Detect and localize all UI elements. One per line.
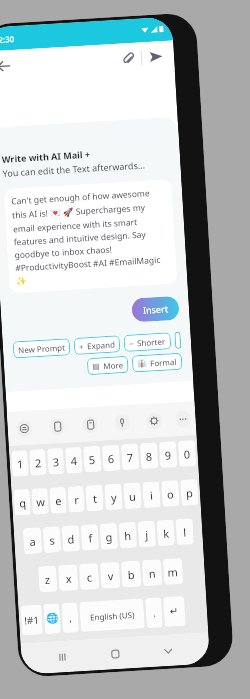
button[interactable]: Back (0, 54, 15, 77)
staticText: u (129, 489, 136, 504)
staticText: . (152, 606, 156, 620)
button[interactable]: s (43, 526, 61, 553)
button[interactable]: x (58, 564, 78, 591)
button[interactable]: w (31, 488, 49, 515)
button[interactable]: Attach file (117, 48, 139, 69)
staticText: Formal (150, 356, 177, 368)
button[interactable]: + (73, 335, 120, 355)
button[interactable]: 4 (65, 447, 82, 474)
button[interactable]: u (123, 482, 142, 509)
button[interactable]: 9 (159, 441, 177, 468)
staticText: 4 (70, 453, 78, 468)
staticText: Can't get enough of how awesome this AI … (11, 186, 170, 286)
staticText: k (163, 526, 170, 541)
staticText: 7 (126, 450, 134, 465)
button[interactable]: l (175, 518, 194, 545)
button[interactable]: 7 (121, 443, 139, 470)
button[interactable]: More (168, 401, 196, 436)
button[interactable]: e (49, 487, 67, 514)
staticText: Write with AI Mail + (1, 148, 91, 165)
staticText: 12:30 (0, 33, 15, 45)
button[interactable]: 8 (140, 442, 158, 469)
button[interactable]: 1 (11, 450, 29, 477)
staticText: w (36, 494, 46, 509)
staticText: r (74, 492, 80, 507)
button[interactable]: , (61, 602, 79, 633)
button[interactable]: p (180, 479, 199, 506)
staticText: g (105, 529, 113, 544)
staticText: Expand (87, 339, 115, 351)
button[interactable]: h (119, 522, 137, 549)
staticText: − (129, 338, 134, 349)
button[interactable]: Insert (131, 296, 180, 322)
staticText: j (145, 527, 149, 542)
button[interactable]: y (104, 483, 123, 510)
button[interactable]: 6 (102, 444, 120, 471)
staticText: p (185, 485, 193, 501)
staticText: b (127, 567, 135, 582)
button[interactable]: 😀 (174, 332, 181, 349)
button[interactable]: r (67, 486, 85, 513)
button[interactable]: New Prompt (13, 338, 70, 359)
button[interactable]: a (23, 527, 42, 554)
button[interactable]: v (100, 562, 120, 589)
button[interactable]: ↵ (163, 596, 186, 627)
button[interactable]: Back (156, 638, 181, 664)
button[interactable]: 👔 (132, 353, 183, 372)
button[interactable]: Sticker (73, 406, 107, 442)
staticText: More (103, 359, 123, 371)
staticText: 👔 (137, 359, 147, 368)
staticText: x (65, 570, 72, 586)
staticText: 2 (34, 455, 42, 470)
staticText: q (19, 495, 27, 510)
button[interactable]: 0 (178, 440, 196, 467)
button[interactable]: g (100, 523, 118, 550)
button[interactable]: m (163, 558, 183, 585)
button[interactable]: o (161, 480, 180, 507)
button[interactable]: q (13, 489, 31, 516)
button[interactable]: d (62, 525, 80, 552)
button[interactable]: Send (144, 45, 168, 68)
staticText: o (166, 486, 174, 502)
button[interactable]: n (142, 559, 162, 586)
button[interactable]: z (38, 565, 57, 592)
staticText: 9 (164, 447, 172, 463)
staticText: ↵ (170, 605, 179, 618)
staticText: z (44, 572, 51, 587)
button[interactable]: f (81, 524, 99, 551)
button[interactable]: i (142, 481, 161, 508)
button[interactable]: English (US) (79, 598, 145, 632)
button[interactable]: Home (103, 641, 128, 667)
button[interactable]: !#1 (20, 604, 43, 636)
staticText: t (93, 491, 97, 506)
button[interactable]: j (137, 520, 156, 547)
button[interactable]: Voice input (105, 404, 139, 440)
button[interactable]: 2 (29, 449, 47, 476)
staticText: y (111, 490, 117, 505)
button[interactable]: GIF (40, 408, 75, 444)
staticText: 0 (183, 446, 191, 462)
button[interactable]: Recent apps (50, 644, 75, 670)
staticText: f (88, 530, 93, 545)
staticText: English (US) (90, 609, 135, 622)
staticText: l (183, 525, 187, 540)
staticText: e (55, 493, 63, 508)
staticText: New Prompt (18, 341, 65, 355)
staticText: 1 (16, 456, 24, 472)
staticText: Insert (143, 302, 168, 316)
staticText: 3 (52, 454, 60, 469)
button[interactable]: Emoji (7, 410, 42, 446)
button[interactable]: 3 (47, 448, 64, 475)
button[interactable]: 🌐 (43, 603, 61, 634)
button[interactable]: b (121, 560, 141, 588)
button[interactable]: k (156, 519, 175, 546)
button[interactable]: − (123, 332, 171, 352)
button[interactable]: ▤ (87, 356, 129, 375)
staticText: s (49, 532, 56, 548)
button[interactable]: 5 (83, 446, 101, 473)
button[interactable]: Settings (137, 402, 171, 438)
button[interactable]: t (85, 485, 104, 512)
button[interactable]: . (145, 597, 163, 628)
staticText: a (29, 534, 37, 549)
button[interactable]: c (79, 563, 99, 590)
